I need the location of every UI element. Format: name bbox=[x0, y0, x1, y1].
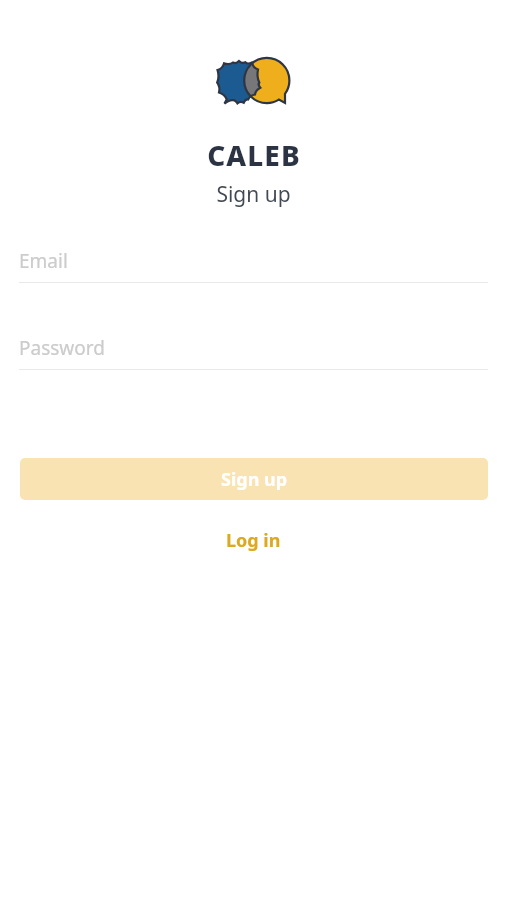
staticText: Log in bbox=[226, 528, 281, 553]
button[interactable]: Password bbox=[19, 335, 488, 370]
staticText: CALEB bbox=[207, 136, 301, 174]
button[interactable]: Log in bbox=[170, 523, 337, 557]
staticText: Sign up bbox=[216, 180, 291, 209]
staticText: Password bbox=[19, 335, 105, 361]
staticText: Email bbox=[19, 248, 68, 274]
button[interactable]: Email bbox=[19, 248, 488, 283]
staticText: Sign up bbox=[221, 467, 288, 492]
other: Caleb logo bbox=[214, 58, 292, 110]
button[interactable]: Sign up bbox=[20, 458, 488, 500]
